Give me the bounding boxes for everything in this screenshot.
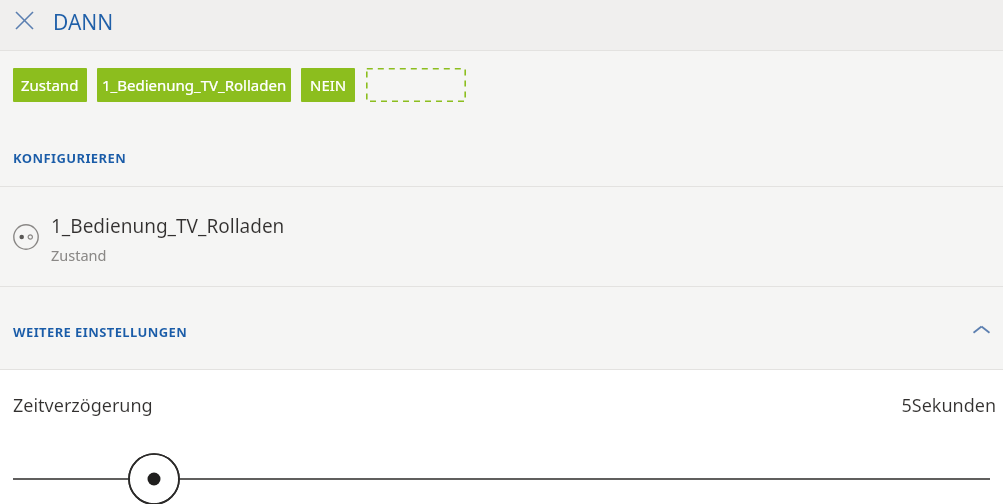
button[interactable]: Schließen	[6, 2, 42, 38]
button[interactable]: 1_Bedienung_TV_Rolladen	[97, 68, 291, 102]
button[interactable]: Zustand	[13, 68, 87, 102]
button[interactable]: 1_Bedienung_TV_Rolladen	[0, 187, 1003, 286]
staticText: 5Sekunden	[901, 393, 996, 418]
button[interactable]: Element hinzufügen	[366, 68, 466, 102]
staticText: Zustand	[21, 75, 79, 95]
staticText: NEIN	[310, 75, 347, 95]
button[interactable]: Zeitverzögerung Schieberegler	[129, 454, 179, 504]
staticText: 1_Bedienung_TV_Rolladen	[102, 75, 287, 95]
staticText: 1_Bedienung_TV_Rolladen	[51, 213, 285, 239]
button[interactable]: KONFIGURIEREN	[13, 149, 127, 167]
other: Einklappen	[961, 310, 1001, 350]
button[interactable]: NEIN	[301, 68, 355, 102]
staticText: DANN	[53, 8, 114, 37]
staticText: Zustand	[51, 245, 107, 265]
button[interactable]: WEITERE EINSTELLUNGEN	[0, 287, 1003, 369]
staticText: WEITERE EINSTELLUNGEN	[13, 323, 188, 341]
staticText: Zeitverzögerung	[13, 393, 153, 418]
